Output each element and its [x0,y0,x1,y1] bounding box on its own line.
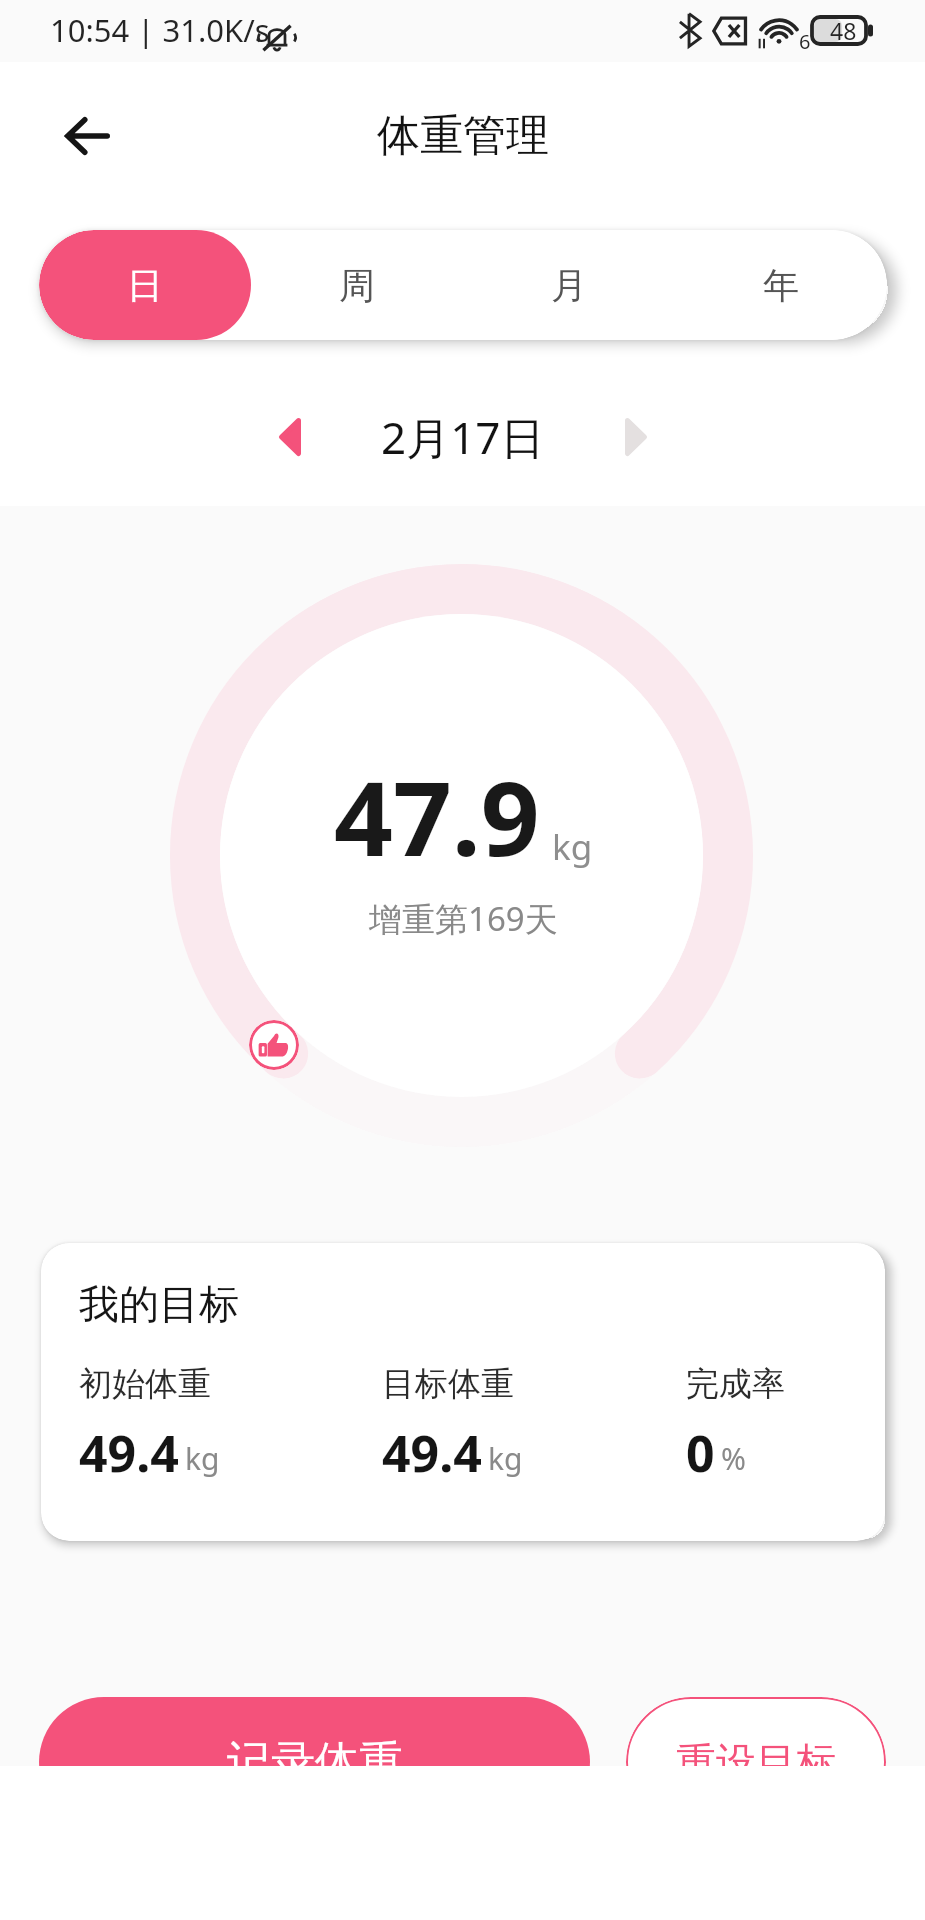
button[interactable]: 重设目标 [626,1697,886,1827]
button[interactable]: 记录体重 [39,1697,590,1827]
staticText: 2月17日 [381,407,545,467]
button[interactable]: Like [249,1020,299,1070]
staticText: 49.4 [79,1419,179,1487]
button[interactable]: 年 [675,230,887,340]
staticText: 10:54 | 31.0K/s [50,9,270,51]
staticText: 记录体重 [227,1735,403,1790]
staticText: 周 [339,263,375,308]
button[interactable]: Next day [603,404,669,470]
button[interactable]: 周 [251,230,463,340]
button[interactable]: 日 [39,230,251,340]
staticText: 年 [763,263,799,308]
staticText: 我的目标 [79,1279,239,1329]
staticText: kg [488,1438,523,1479]
staticText: 重设目标 [676,1737,836,1787]
staticText: 47.9 [334,746,540,886]
staticText: 目标体重 [382,1363,514,1405]
staticText: kg [552,823,593,871]
staticText: 0 [686,1419,715,1487]
staticText: 增重第169天 [369,896,558,941]
staticText: 日 [127,263,163,308]
button[interactable]: Back [52,104,116,168]
staticText: 体重管理 [377,109,549,163]
staticText: 6 [799,28,811,55]
button[interactable]: 月 [463,230,675,340]
button[interactable]: Previous day [257,404,323,470]
staticText: 月 [551,263,587,308]
staticText: 49.4 [382,1419,482,1487]
staticText: kg [185,1438,220,1479]
staticText: % [721,1438,746,1479]
staticText: 48 [830,15,857,46]
staticText: 初始体重 [79,1363,211,1405]
staticText: 完成率 [686,1363,785,1405]
